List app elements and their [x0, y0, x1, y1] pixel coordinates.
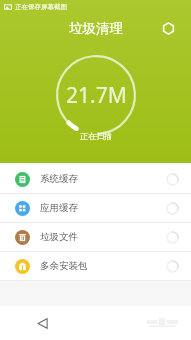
staticText: 垃圾清理: [69, 20, 123, 37]
button[interactable]: 系统缓存: [0, 165, 191, 193]
staticText: 系统缓存: [40, 173, 166, 185]
staticText: 多余安装包: [40, 260, 166, 272]
staticText: 21.7M: [66, 81, 127, 110]
button[interactable]: 垃圾文件: [0, 223, 191, 251]
staticText: 应用缓存: [40, 202, 166, 214]
staticText: 正在扫描: [80, 131, 112, 141]
button[interactable]: Settings: [157, 17, 179, 39]
button[interactable]: 应用缓存: [0, 194, 191, 222]
button[interactable]: 多余安装包: [0, 252, 191, 280]
staticText: 正在保存屏幕截图: [15, 3, 67, 11]
button[interactable]: Back: [28, 309, 56, 337]
staticText: 垃圾文件: [40, 231, 166, 243]
